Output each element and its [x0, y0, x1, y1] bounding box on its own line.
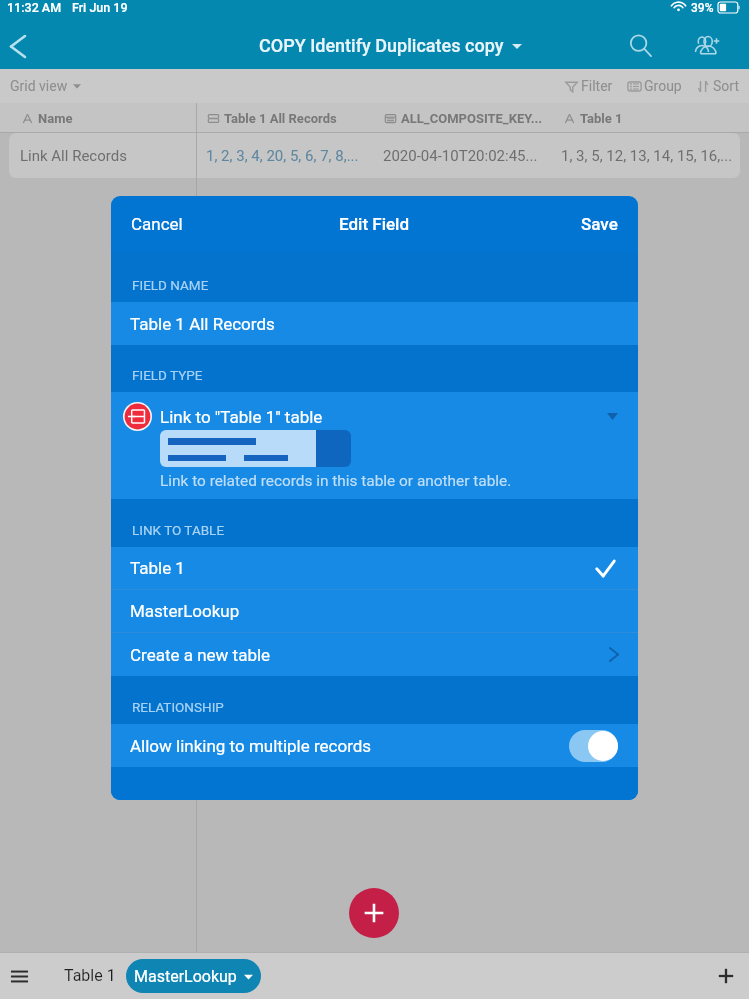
staticText: Table 1 — [64, 966, 116, 985]
button[interactable]: Menu — [5, 962, 33, 990]
staticText: ALL_COMPOSITE_KEY... — [401, 111, 543, 126]
button[interactable]: Grid view — [10, 78, 81, 94]
button[interactable]: Back — [0, 24, 40, 68]
staticText: Allow linking to multiple records — [130, 736, 372, 756]
staticText: Cancel — [131, 214, 183, 234]
button[interactable]: Allow linking to multiple records — [111, 724, 638, 767]
button[interactable]: Sort — [694, 74, 741, 98]
staticText: COPY Identify Duplicates copy — [259, 35, 504, 56]
staticText: Filter — [581, 78, 613, 94]
staticText: Group — [644, 78, 682, 94]
button[interactable]: Add record — [349, 888, 399, 938]
staticText: Fri Jun 19 — [72, 0, 128, 15]
staticText: Link to related records in this table or… — [160, 472, 512, 490]
button[interactable]: Link to "Table 1" table — [111, 392, 638, 499]
staticText: FIELD NAME — [132, 277, 209, 293]
button[interactable]: MasterLookup — [111, 590, 638, 632]
button[interactable]: Group — [625, 74, 684, 98]
staticText: Table 1 All Records — [224, 111, 337, 126]
staticText: Table 1 All Records — [130, 314, 275, 334]
staticText: 1, 2, 3, 4, 20, 5, 6, 7, 8,... — [206, 147, 359, 165]
button[interactable]: Cancel — [111, 204, 203, 244]
staticText: Create a new table — [130, 645, 271, 665]
staticText: Link All Records — [20, 147, 127, 165]
button[interactable]: Filter — [562, 74, 615, 98]
staticText: 11:32 AM — [7, 0, 62, 15]
button[interactable]: MasterLookup — [126, 959, 261, 993]
button[interactable]: Search — [619, 24, 663, 68]
button[interactable]: Create a new table — [111, 633, 638, 676]
button[interactable]: Table 1 All Records — [111, 302, 638, 345]
staticText: Table 1 — [580, 111, 623, 126]
staticText: 39% — [691, 1, 714, 15]
staticText: Link to "Table 1" table — [160, 407, 323, 427]
button[interactable]: Share with collaborators — [685, 24, 729, 68]
staticText: 2020-04-10T20:02:45... — [383, 147, 538, 165]
staticText: MasterLookup — [130, 601, 240, 621]
button[interactable]: Add table — [712, 962, 740, 990]
button[interactable]: Allow linking to multiple records toggle — [569, 730, 618, 762]
staticText: 1, 3, 5, 12, 13, 14, 15, 16,... — [561, 147, 733, 165]
button[interactable]: Table 1 — [56, 959, 124, 992]
button[interactable]: Table 1 — [111, 547, 638, 589]
staticText: MasterLookup — [134, 967, 237, 986]
staticText: RELATIONSHIP — [132, 699, 224, 715]
staticText: Table 1 — [130, 558, 185, 578]
staticText: LINK TO TABLE — [132, 522, 225, 538]
staticText: Save — [581, 214, 618, 234]
staticText: Edit Field — [339, 214, 410, 234]
staticText: Grid view — [10, 78, 68, 94]
button[interactable]: COPY Identify Duplicates copy — [259, 35, 522, 56]
staticText: FIELD TYPE — [132, 367, 203, 383]
staticText: Name — [38, 111, 73, 126]
staticText: Sort — [713, 78, 739, 94]
button[interactable]: Save — [561, 204, 638, 244]
button[interactable] — [9, 133, 740, 178]
